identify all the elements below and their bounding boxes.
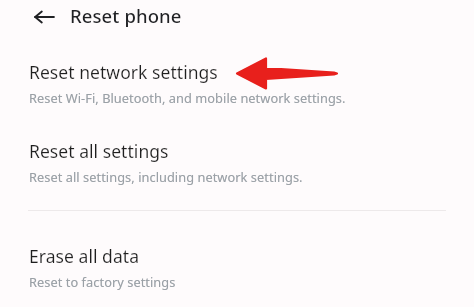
staticText: Erase all data bbox=[29, 244, 140, 268]
staticText: Reset all settings, including network se… bbox=[29, 168, 303, 185]
button[interactable]: Back bbox=[26, 0, 62, 34]
button[interactable]: Reset network settings bbox=[0, 60, 474, 106]
staticText: Reset Wi-Fi, Bluetooth, and mobile netwo… bbox=[29, 89, 346, 106]
button[interactable]: Reset all settings bbox=[0, 139, 474, 185]
staticText: Reset to factory settings bbox=[29, 273, 176, 290]
staticText: Reset phone bbox=[70, 3, 182, 28]
button[interactable]: Erase all data bbox=[0, 244, 474, 290]
staticText: Reset network settings bbox=[29, 60, 218, 84]
staticText: Reset all settings bbox=[29, 139, 169, 163]
